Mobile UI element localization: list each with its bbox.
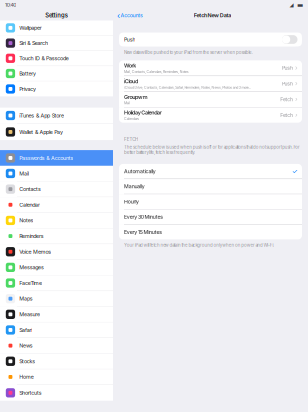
staticText: iCloud Drive, Contacts, Calendars, Safar… <box>124 85 251 89</box>
button[interactable]: Groupwm <box>119 92 302 107</box>
button[interactable]: Every 15 Minutes <box>119 225 302 239</box>
button[interactable]: Siri & Search <box>0 36 113 51</box>
staticText: Settings <box>45 12 68 19</box>
button[interactable]: Home <box>0 369 113 385</box>
button[interactable]: Touch ID & Passcode <box>0 51 113 66</box>
staticText: Fetch <box>280 112 293 118</box>
staticText: ▬ <box>297 1 303 9</box>
staticText: FaceTime <box>19 280 42 286</box>
button[interactable]: Maps <box>0 291 113 307</box>
button[interactable]: Contacts <box>0 181 113 197</box>
staticText: Mail <box>19 170 29 177</box>
button[interactable]: Notes <box>0 213 113 228</box>
staticText: Reminders <box>19 233 44 239</box>
staticText: Stocks <box>19 358 35 364</box>
button[interactable]: Safari <box>0 322 113 338</box>
staticText: Push <box>282 81 293 87</box>
button[interactable]: Stocks <box>0 354 113 369</box>
staticText: Calendar <box>19 201 40 208</box>
button[interactable]: Passwords & Accounts <box>0 150 113 166</box>
staticText: News <box>19 342 33 349</box>
staticText: Notes <box>19 217 33 224</box>
button[interactable]: Messages <box>0 260 113 275</box>
staticText: Every 15 Minutes <box>124 229 162 235</box>
staticText: Every 30 Minutes <box>124 214 163 220</box>
staticText: Safari <box>19 327 32 333</box>
button[interactable]: Voice Memos <box>0 244 113 260</box>
staticText: ◢ <box>289 2 293 8</box>
button[interactable]: iCloud <box>119 76 302 92</box>
button[interactable]: News <box>0 338 113 354</box>
staticText: › <box>295 95 298 103</box>
staticText: ✓ <box>292 167 298 175</box>
staticText: Calendars <box>124 117 139 121</box>
staticText: Work <box>124 62 136 69</box>
staticText: Mail <box>124 101 130 105</box>
staticText: Groupwm <box>124 94 148 100</box>
staticText: Fetch New Data <box>194 12 231 18</box>
staticText: Fetch <box>280 96 293 102</box>
button[interactable]: Shortcuts <box>0 385 113 401</box>
staticText: Battery <box>19 70 36 77</box>
staticText: › <box>295 64 298 72</box>
staticText: iCloud <box>124 78 138 84</box>
staticText: Contacts <box>19 186 41 192</box>
button[interactable]: FaceTime <box>0 275 113 291</box>
button[interactable]: Reminders <box>0 228 113 244</box>
staticText: Home <box>19 374 34 380</box>
staticText: › <box>295 80 298 88</box>
staticText: Touch ID & Passcode <box>19 55 69 62</box>
staticText: Automatically <box>124 168 156 174</box>
staticText: Your iPad will fetch new data in the bac… <box>124 243 274 248</box>
staticText: ‹ <box>117 10 120 20</box>
button[interactable]: ‹ <box>113 10 143 20</box>
staticText: FETCH <box>124 137 138 142</box>
staticText: New data will be pushed to your iPad fro… <box>124 50 253 55</box>
staticText: Measure <box>19 311 40 318</box>
button[interactable]: Mail <box>0 166 113 182</box>
button[interactable]: Privacy <box>0 81 113 97</box>
button[interactable]: Wallpaper <box>0 20 113 36</box>
staticText: Manually <box>124 183 145 190</box>
staticText: Push <box>282 65 293 71</box>
staticText: Maps <box>19 295 33 302</box>
staticText: Voice Memos <box>19 248 51 255</box>
staticText: Shortcuts <box>19 390 42 396</box>
staticText: › <box>295 111 298 119</box>
button[interactable]: Wallet & Apple Pay <box>0 124 113 140</box>
button[interactable]: Calendar <box>0 197 113 213</box>
staticText: 10:40 <box>5 2 16 8</box>
button[interactable]: Work <box>119 60 302 76</box>
staticText: Accounts <box>120 12 143 18</box>
button[interactable]: Manually <box>119 179 302 194</box>
button[interactable]: Measure <box>0 307 113 322</box>
button[interactable]: Holiday Calendar <box>119 107 302 123</box>
staticText: Wallpaper <box>19 25 42 31</box>
staticText: Siri & Search <box>19 40 48 46</box>
staticText: Wallet & Apple Pay <box>19 129 63 135</box>
button[interactable]: Hourly <box>119 194 302 209</box>
button[interactable]: Every 30 Minutes <box>119 209 302 225</box>
staticText: iTunes & App Store <box>19 112 64 119</box>
staticText: Hourly <box>124 198 139 205</box>
staticText: The schedule below is used when push is … <box>124 144 300 155</box>
staticText: Push <box>124 36 135 43</box>
button[interactable]: Battery <box>0 66 113 81</box>
button[interactable]: Automatically <box>119 164 302 179</box>
staticText: Passwords & Accounts <box>19 155 73 161</box>
staticText: Messages <box>19 264 44 271</box>
staticText: Privacy <box>19 86 36 92</box>
button[interactable]: iTunes & App Store <box>0 108 113 124</box>
staticText: Mail, Contacts, Calendars, Reminders, No… <box>124 70 189 74</box>
staticText: Holiday Calendar <box>124 109 162 116</box>
button[interactable]: Push <box>282 35 297 44</box>
